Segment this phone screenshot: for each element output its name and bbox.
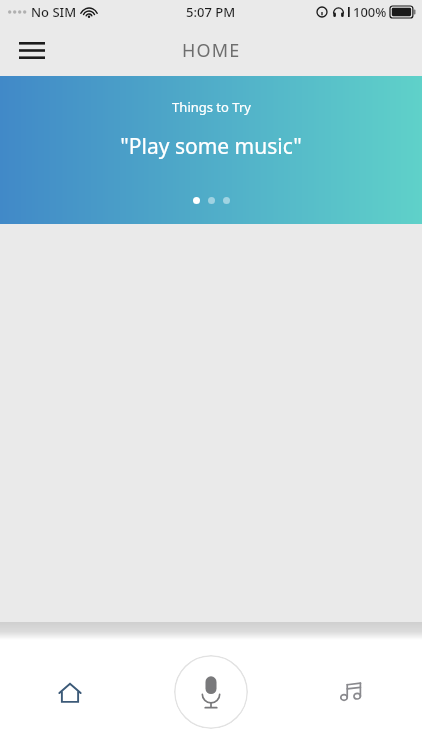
button[interactable]: Home bbox=[0, 650, 140, 734]
staticText: Things to Try bbox=[172, 98, 251, 116]
staticText: "Play some music" bbox=[120, 132, 302, 161]
staticText: HOME bbox=[182, 38, 241, 63]
button[interactable]: Music bbox=[281, 650, 422, 734]
staticText: No SIM bbox=[31, 3, 77, 21]
staticText: 100% bbox=[353, 3, 387, 21]
button[interactable]: Things to Try bbox=[0, 76, 422, 224]
button[interactable]: Voice input bbox=[174, 655, 248, 729]
button[interactable]: Open navigation menu bbox=[10, 28, 54, 72]
staticText: 5:07 PM bbox=[186, 3, 236, 21]
